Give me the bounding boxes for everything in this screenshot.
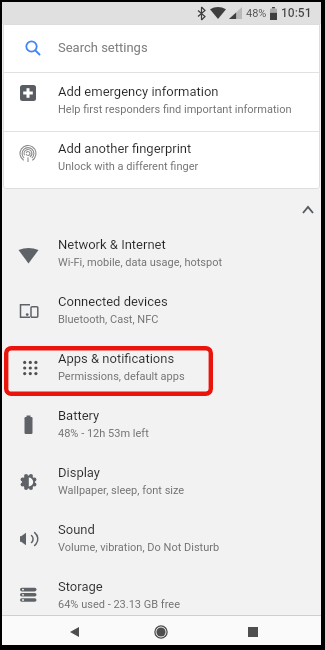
staticText: Permissions, default apps bbox=[58, 370, 185, 383]
staticText: Volume, vibration, Do Not Disturb bbox=[58, 541, 220, 554]
button[interactable] bbox=[296, 198, 320, 222]
button[interactable] bbox=[236, 620, 270, 644]
staticText: Add another fingerprint bbox=[58, 141, 192, 156]
staticText: 48% - 12h 53m left bbox=[58, 427, 149, 440]
button[interactable]: Add another fingerprint bbox=[3, 132, 320, 189]
staticText: Bluetooth, Cast, NFC bbox=[58, 313, 159, 326]
button[interactable]: Add emergency information bbox=[3, 73, 320, 131]
staticText: Wallpaper, sleep, font size bbox=[58, 484, 185, 497]
button[interactable]: Storage bbox=[2, 568, 321, 625]
staticText: Wi-Fi, mobile, data usage, hotspot bbox=[58, 256, 223, 269]
staticText: Sound bbox=[58, 522, 95, 537]
staticText: Unlock with a different finger bbox=[58, 160, 199, 173]
staticText: Connected devices bbox=[58, 294, 168, 309]
button[interactable]: Battery bbox=[2, 397, 321, 454]
staticText: Display bbox=[58, 465, 100, 480]
staticText: Network & Internet bbox=[58, 237, 166, 252]
staticText: 64% used - 23.13 GB free bbox=[58, 598, 180, 611]
staticText: Search settings bbox=[58, 40, 148, 55]
staticText: Add emergency information bbox=[58, 84, 219, 99]
button[interactable] bbox=[144, 620, 178, 644]
button[interactable]: Apps & notifications bbox=[2, 340, 321, 397]
staticText: Apps & notifications bbox=[58, 351, 175, 366]
staticText: 48% bbox=[246, 7, 267, 20]
button[interactable]: Display bbox=[2, 454, 321, 511]
staticText: 10:51 bbox=[281, 6, 312, 20]
button[interactable]: Network & Internet bbox=[2, 226, 321, 283]
button[interactable]: Search settings bbox=[3, 24, 320, 72]
button[interactable]: Sound bbox=[2, 511, 321, 568]
button[interactable]: Connected devices bbox=[2, 283, 321, 340]
staticText: Battery bbox=[58, 408, 100, 423]
button[interactable] bbox=[57, 620, 91, 644]
staticText: Storage bbox=[58, 579, 103, 594]
staticText: Help first responders find important inf… bbox=[58, 103, 292, 116]
